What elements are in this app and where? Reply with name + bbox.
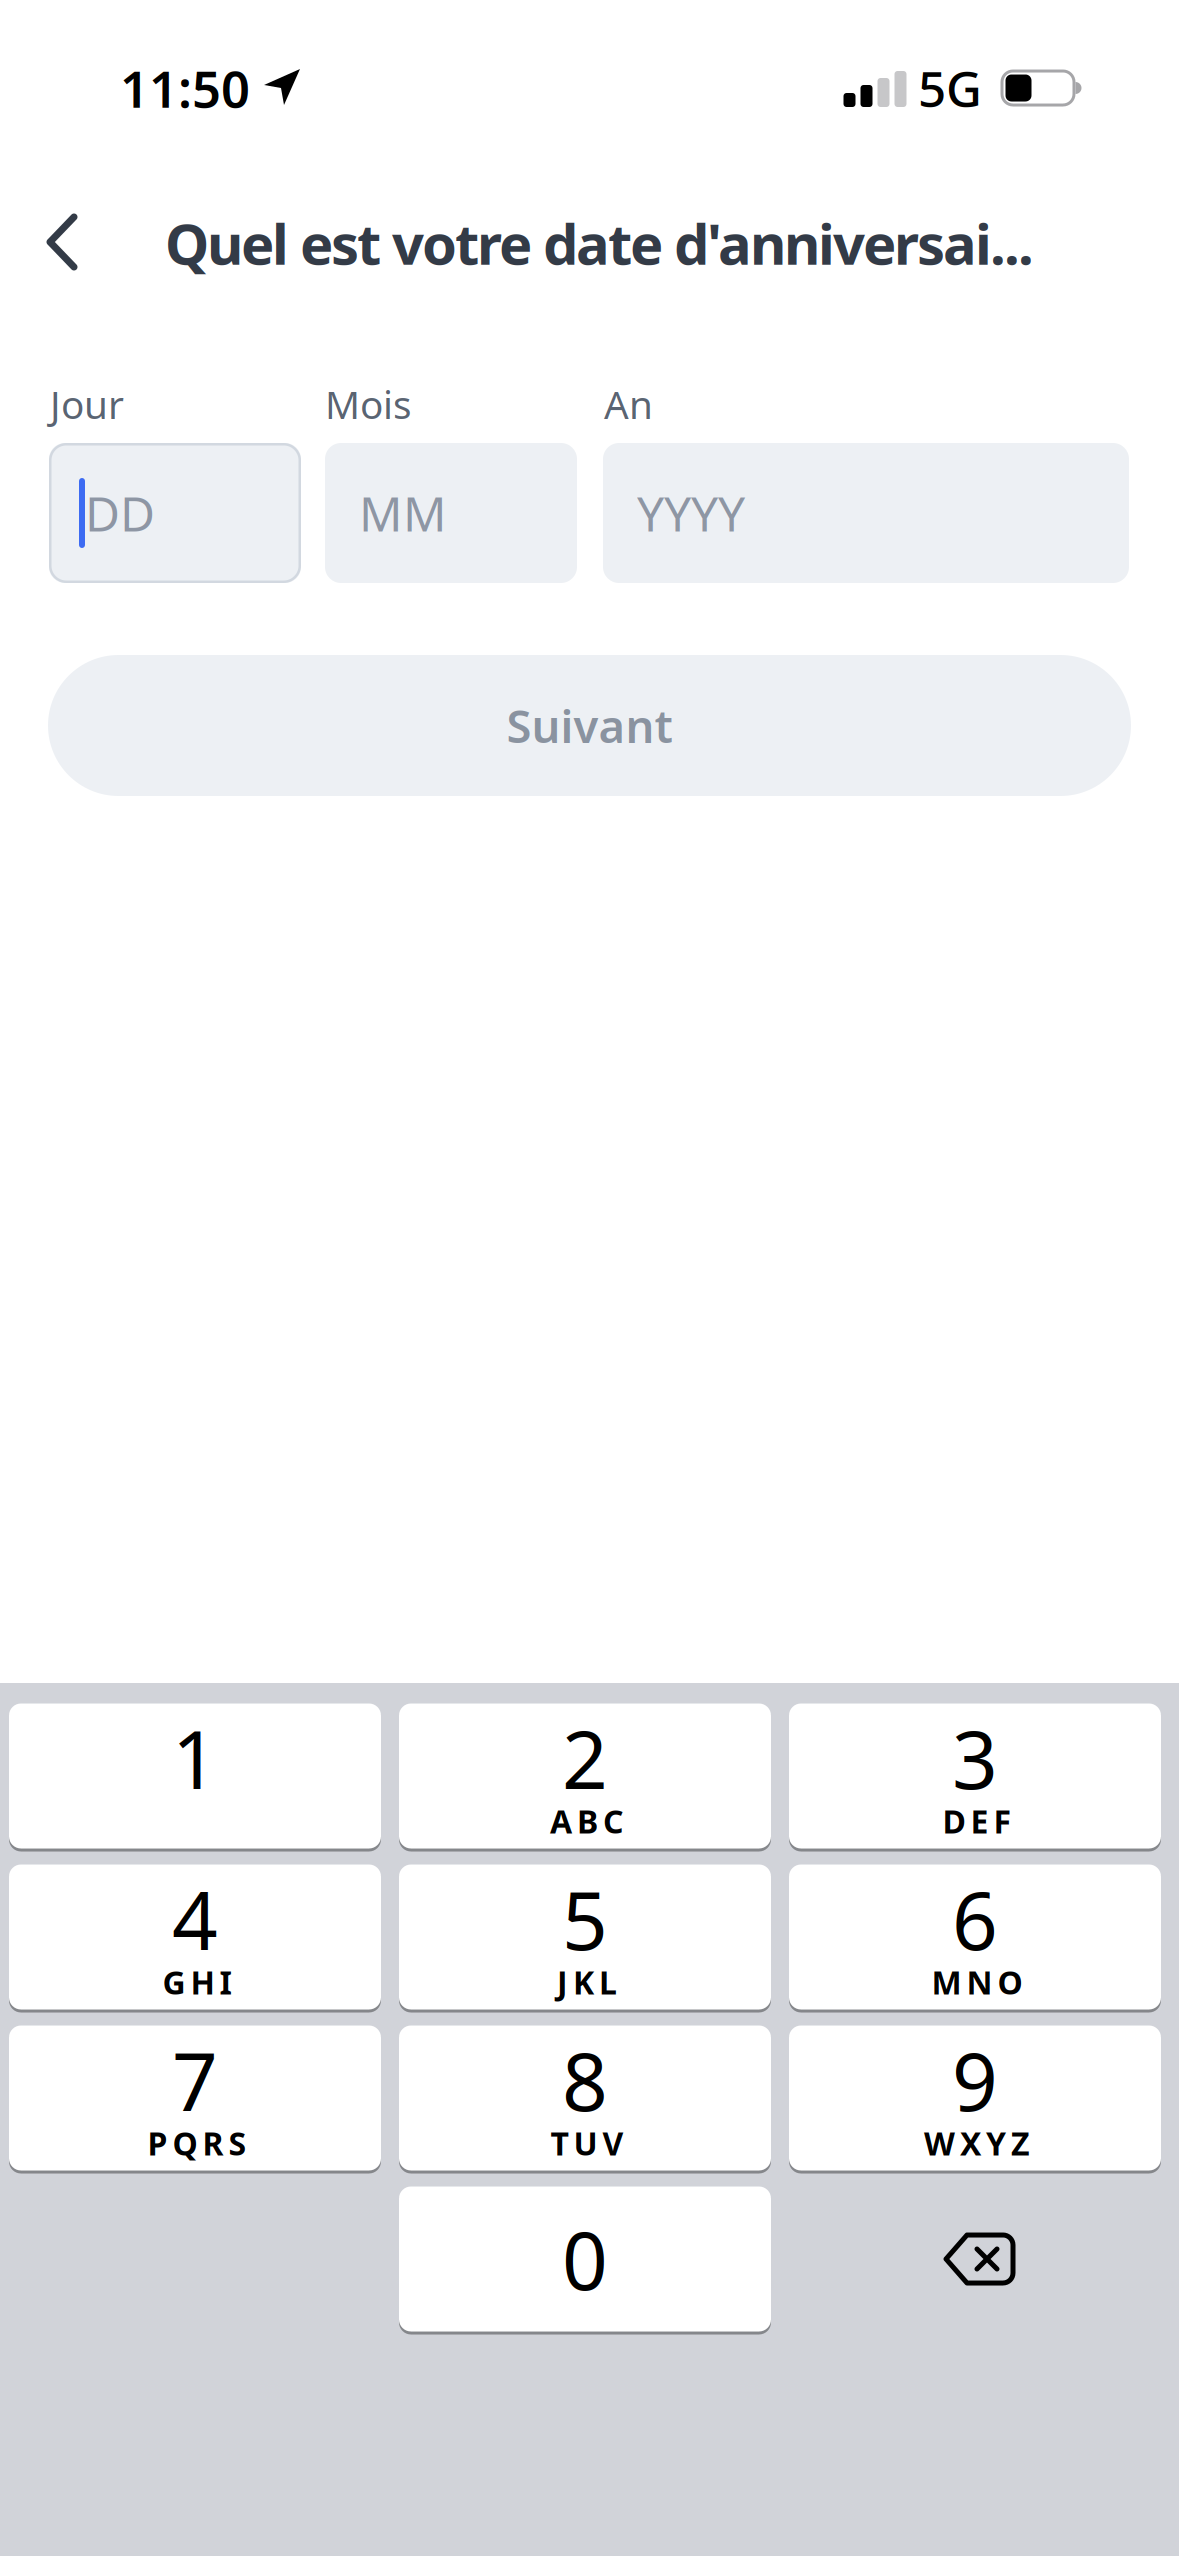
staticText: YYYY [637, 481, 745, 545]
button[interactable]: 5 [399, 1863, 771, 2011]
staticText: 6 [952, 1866, 998, 1972]
button[interactable]: 0 [399, 2185, 771, 2333]
button[interactable]: 7 [9, 2024, 381, 2172]
staticText: PQRS [147, 2122, 246, 2164]
staticText: 5 [562, 1866, 608, 1972]
staticText: MNO [931, 1961, 1022, 2003]
staticText: Suivant [506, 695, 672, 756]
button[interactable]: YYYY [603, 443, 1129, 583]
staticText: DEF [942, 1800, 1011, 1842]
staticText: DD [85, 481, 155, 545]
staticText: 7 [172, 2027, 218, 2133]
staticText: 1 [172, 1705, 218, 1811]
staticText: 11:50 [120, 54, 250, 122]
staticText: Jour [50, 378, 124, 430]
staticText: 4 [172, 1866, 218, 1972]
button[interactable]: 2 [399, 1702, 771, 1850]
staticText: MM [359, 481, 447, 545]
button[interactable]: Suivant [48, 655, 1131, 796]
button[interactable]: 4 [9, 1863, 381, 2011]
staticText: 8 [562, 2027, 608, 2133]
button[interactable]: MM [325, 443, 577, 583]
button[interactable]: 9 [789, 2024, 1161, 2172]
staticText: Quel est votre date d'anniversai... [165, 206, 1034, 280]
staticText: An [604, 378, 653, 430]
staticText: 2 [562, 1705, 608, 1811]
button[interactable]: Supprimer [789, 2185, 1161, 2333]
staticText: WXYZ [924, 2122, 1030, 2164]
button[interactable]: 8 [399, 2024, 771, 2172]
staticText: GHI [162, 1961, 231, 2003]
staticText: ABC [550, 1800, 624, 1842]
staticText: 5G [918, 55, 982, 121]
staticText: JKL [557, 1961, 617, 2003]
staticText: Mois [325, 378, 412, 430]
button[interactable]: Retour [27, 202, 97, 282]
button[interactable]: 6 [789, 1863, 1161, 2011]
button[interactable]: 1 [9, 1702, 381, 1850]
staticText: 0 [562, 2206, 608, 2312]
button[interactable]: Jour [49, 443, 301, 583]
staticText: TUV [550, 2122, 623, 2164]
button[interactable]: 3 [789, 1702, 1161, 1850]
staticText: 9 [952, 2027, 998, 2133]
staticText: 3 [952, 1705, 998, 1811]
